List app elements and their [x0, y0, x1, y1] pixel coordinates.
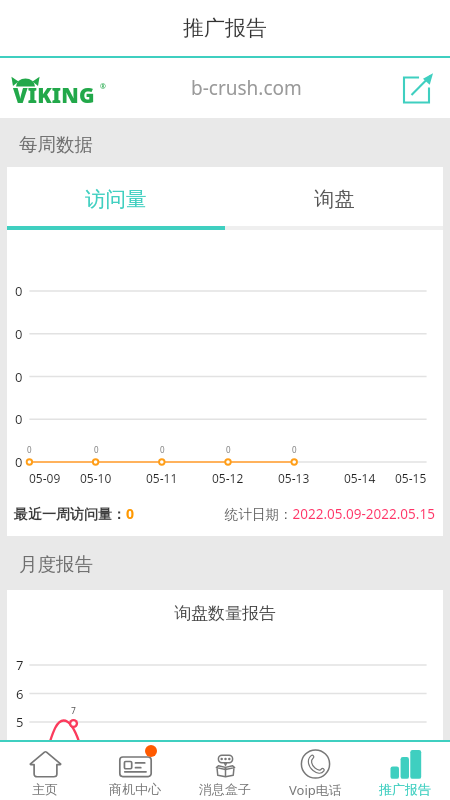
staticText: 05-15	[395, 470, 427, 486]
staticText: 05-11	[146, 470, 178, 486]
button[interactable]: 推广报告	[360, 742, 450, 800]
staticText: 月度报告	[19, 553, 93, 576]
staticText: 05-09	[29, 470, 61, 486]
button[interactable]: Voip电话	[270, 742, 360, 800]
staticText: 6	[16, 685, 24, 703]
staticText: ®	[100, 82, 106, 92]
staticText: 0	[160, 444, 165, 455]
staticText: 7	[16, 656, 24, 674]
staticText: 0	[15, 453, 23, 471]
staticText: 0	[292, 444, 297, 455]
staticText: 0	[15, 282, 23, 300]
staticText: 统计日期：2022.05.09-2022.05.15	[225, 505, 435, 523]
staticText: 推广报告	[379, 781, 431, 797]
button[interactable]: 主页	[0, 742, 90, 800]
button[interactable]: 询盘	[225, 167, 443, 226]
staticText: 5	[16, 713, 24, 731]
button[interactable]: Open website	[399, 68, 439, 108]
staticText: 最近一周访问量：0	[14, 504, 135, 523]
staticText: 推广报告	[183, 15, 267, 41]
staticText: 消息盒子	[199, 781, 251, 797]
staticText: 0	[15, 410, 23, 428]
staticText: 0	[15, 368, 23, 386]
staticText: VIKING	[13, 81, 95, 110]
staticText: 0	[226, 444, 231, 455]
button[interactable]: 商机中心	[90, 742, 180, 800]
staticText: 商机中心	[109, 781, 161, 797]
staticText: b-crush.com	[191, 75, 302, 101]
staticText: 主页	[32, 781, 58, 797]
staticText: 0	[15, 325, 23, 343]
button[interactable]: 消息盒子	[180, 742, 270, 800]
staticText: 询盘数量报告	[174, 603, 276, 624]
staticText: 05-12	[212, 470, 244, 486]
staticText: 访问量	[85, 186, 147, 212]
staticText: 0	[27, 444, 32, 455]
button[interactable]: 访问量	[7, 167, 225, 226]
staticText: Voip电话	[289, 781, 342, 799]
staticText: 05-10	[80, 470, 112, 486]
staticText: 询盘	[314, 186, 355, 212]
staticText: 7	[71, 705, 76, 717]
staticText: 每周数据	[19, 133, 93, 156]
staticText: 0	[94, 444, 99, 455]
staticText: 05-13	[278, 470, 310, 486]
staticText: 05-14	[344, 470, 376, 486]
